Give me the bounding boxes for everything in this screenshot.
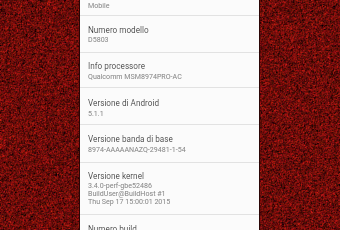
button[interactable]: Mobile	[80, 0, 259, 15]
staticText: Thu Sep 17 15:00:01 2015	[88, 197, 171, 205]
button[interactable]: Numero modello	[80, 16, 259, 52]
button[interactable]: Info processore	[80, 53, 259, 87]
button[interactable]: Numero build	[80, 215, 259, 230]
staticText: Mobile	[88, 1, 110, 9]
staticText: 3.4.0-perf-gbe52486	[88, 181, 152, 189]
button[interactable]: Versione banda di base	[80, 125, 259, 162]
button[interactable]: Versione kernel	[80, 163, 259, 214]
staticText: Numero modello	[88, 25, 149, 35]
staticText: Versione kernel	[88, 171, 144, 181]
staticText: 8974-AAAAANAZQ-29481-1-54	[88, 145, 186, 153]
staticText: Info processore	[88, 61, 146, 71]
staticText: D5803	[88, 35, 109, 43]
staticText: Versione banda di base	[88, 134, 173, 144]
staticText: Versione di Android	[88, 98, 160, 108]
staticText: Numero build	[88, 224, 137, 230]
staticText: Qualcomm MSM8974PRO-AC	[88, 72, 182, 80]
staticText: 5.1.1	[88, 109, 104, 117]
staticText: BuildUser@BuildHost #1	[88, 189, 166, 197]
button[interactable]: Versione di Android	[80, 88, 259, 124]
